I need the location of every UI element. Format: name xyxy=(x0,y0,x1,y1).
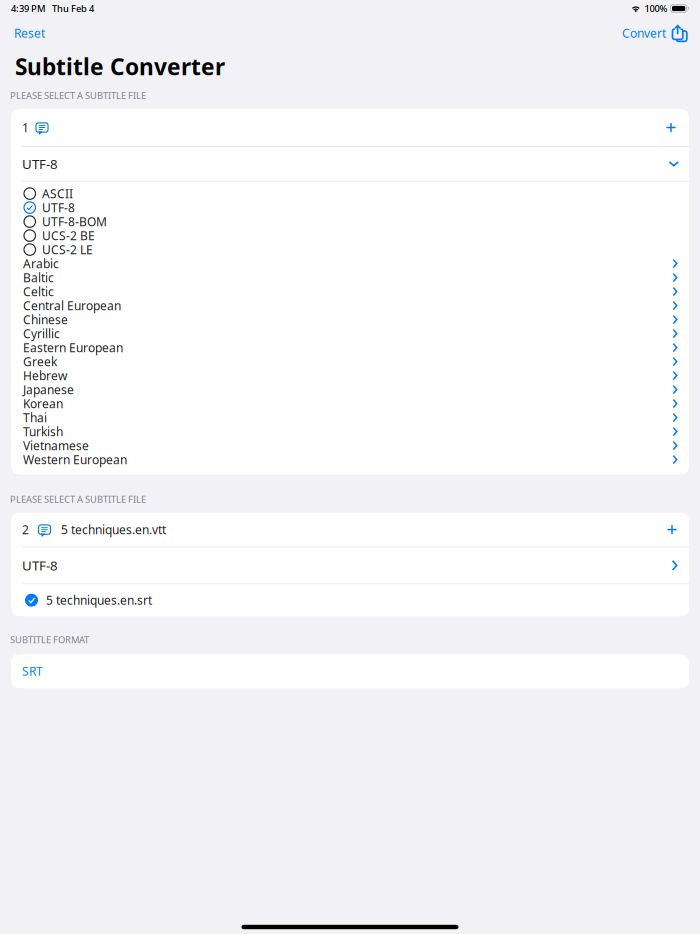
button[interactable]: Convert xyxy=(609,20,700,46)
staticText: PLEASE SELECT A SUBTITLE FILE xyxy=(10,89,146,102)
staticText: 100% xyxy=(645,2,668,15)
button[interactable]: Celtic xyxy=(11,285,689,299)
button[interactable]: Western European xyxy=(11,453,689,467)
staticText: Convert xyxy=(622,25,666,41)
button[interactable]: Arabic xyxy=(11,257,689,271)
button[interactable]: SRT xyxy=(11,654,689,688)
staticText: Japanese xyxy=(23,382,74,397)
staticText: Arabic xyxy=(23,256,59,271)
staticText: Chinese xyxy=(23,312,68,327)
button[interactable]: Thai xyxy=(11,411,689,425)
staticText: 2 xyxy=(22,522,29,537)
staticText: UTF-8-BOM xyxy=(42,214,107,229)
staticText: Greek xyxy=(23,354,57,369)
staticText: Celtic xyxy=(23,284,54,299)
staticText: 4:39 PM xyxy=(11,2,46,15)
button[interactable]: Eastern European xyxy=(11,341,689,355)
staticText: Western European xyxy=(23,452,127,467)
button[interactable]: Central European xyxy=(11,299,689,313)
button[interactable]: UCS-2 BE xyxy=(11,229,689,243)
button[interactable]: Vietnamese xyxy=(11,439,689,453)
button[interactable]: 2 xyxy=(11,513,655,547)
button[interactable]: Greek xyxy=(11,355,689,369)
staticText: UTF-8 xyxy=(22,155,58,173)
staticText: Reset xyxy=(14,25,45,41)
staticText: ASCII xyxy=(42,186,73,201)
staticText: Eastern European xyxy=(23,340,123,355)
staticText: Thai xyxy=(23,410,47,425)
button[interactable]: ASCII xyxy=(11,187,689,201)
staticText: PLEASE SELECT A SUBTITLE FILE xyxy=(10,493,146,505)
staticText: Korean xyxy=(23,396,63,411)
button[interactable]: UTF-8 xyxy=(11,201,689,215)
staticText: UCS-2 LE xyxy=(42,242,93,257)
button[interactable]: UCS-2 LE xyxy=(11,243,689,257)
button[interactable]: Hebrew xyxy=(11,369,689,383)
button[interactable]: Add subtitle file xyxy=(655,513,689,547)
button[interactable]: Text encoding, UTF-8 xyxy=(11,147,689,181)
staticText: 1 xyxy=(22,119,29,135)
staticText: UCS-2 BE xyxy=(42,228,95,243)
staticText: UTF-8 xyxy=(42,200,75,215)
button[interactable]: Add subtitle file xyxy=(653,109,689,146)
staticText: Baltic xyxy=(23,270,54,285)
staticText: Central European xyxy=(23,298,121,313)
staticText: 5 techniques.en.srt xyxy=(46,592,152,608)
button[interactable]: Baltic xyxy=(11,271,689,285)
button[interactable]: 5 techniques.en.srt xyxy=(11,584,689,616)
button[interactable]: Cyrillic xyxy=(11,327,689,341)
button[interactable]: 1 xyxy=(11,109,653,146)
staticText: UTF-8 xyxy=(22,556,58,574)
button[interactable]: Korean xyxy=(11,397,689,411)
staticText: Cyrillic xyxy=(23,326,60,341)
button[interactable]: Japanese xyxy=(11,383,689,397)
button[interactable]: Text encoding, UTF-8 xyxy=(11,547,689,583)
staticText: 5 techniques.en.vtt xyxy=(61,522,166,537)
staticText: Thu Feb 4 xyxy=(52,2,94,15)
staticText: SRT xyxy=(22,663,43,679)
button[interactable]: Turkish xyxy=(11,425,689,439)
button[interactable]: UTF-8-BOM xyxy=(11,215,689,229)
staticText: Vietnamese xyxy=(23,438,89,453)
staticText: Turkish xyxy=(23,424,63,439)
staticText: SUBTITLE FORMAT xyxy=(10,633,89,646)
staticText: Hebrew xyxy=(23,368,67,383)
button[interactable]: Chinese xyxy=(11,313,689,327)
staticText: Subtitle Converter xyxy=(15,51,225,81)
button[interactable]: Reset xyxy=(0,20,59,46)
